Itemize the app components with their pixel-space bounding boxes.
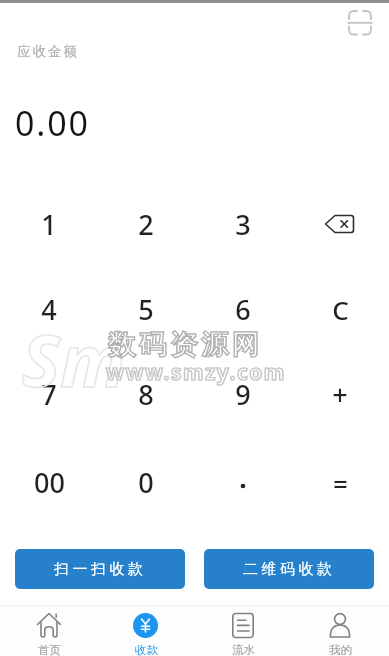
staticText: 0.00: [15, 100, 90, 146]
staticText: 00: [34, 464, 65, 501]
staticText: 6: [235, 291, 251, 328]
staticText: 3: [235, 206, 251, 243]
staticText: 首页: [38, 643, 61, 656]
staticText: www.smzy.com: [106, 358, 286, 387]
staticText: 流水: [232, 643, 255, 656]
staticText: 9: [235, 376, 251, 413]
staticText: Sm: [22, 310, 126, 408]
staticText: 8: [138, 376, 154, 413]
staticText: 应收金额: [16, 43, 78, 60]
staticText: 二维码收款: [243, 560, 336, 579]
staticText: 0: [138, 464, 154, 501]
staticText: 我的: [329, 643, 352, 656]
staticText: C: [332, 292, 349, 327]
staticText: +: [332, 376, 348, 413]
staticText: 7: [41, 376, 57, 413]
staticText: 2: [138, 206, 154, 243]
staticText: 扫一扫收款: [54, 560, 147, 579]
staticText: 4: [41, 291, 57, 328]
staticText: 数码资源网: [106, 328, 261, 362]
staticText: 1: [41, 206, 57, 243]
staticText: =: [333, 465, 348, 500]
staticText: 5: [138, 291, 154, 328]
staticText: 收款: [135, 643, 158, 656]
